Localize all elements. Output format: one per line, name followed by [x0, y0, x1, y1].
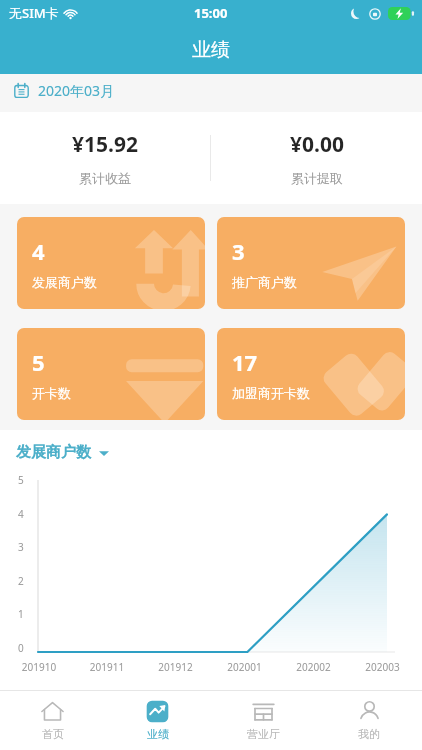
staticText: 发展商户数: [32, 274, 97, 290]
staticText: 201912: [141, 660, 210, 674]
staticText: 17: [232, 347, 258, 377]
button[interactable]: 17: [217, 328, 405, 420]
staticText: ¥15.92: [72, 130, 138, 159]
staticText: 1: [18, 607, 24, 621]
staticText: 5: [18, 473, 24, 487]
other: Select month: [14, 83, 29, 98]
staticText: 201911: [73, 660, 141, 674]
staticText: 202001: [210, 660, 279, 674]
staticText: 加盟商开卡数: [232, 385, 310, 401]
staticText: 201910: [5, 660, 73, 674]
staticText: 首页: [42, 727, 64, 741]
staticText: 2020年03月: [38, 81, 115, 100]
staticText: 4: [18, 507, 24, 521]
staticText: ¥0.00: [290, 130, 344, 159]
button[interactable]: 首页: [0, 691, 105, 750]
button[interactable]: Select month: [0, 74, 422, 107]
staticText: 无SIM卡: [9, 4, 59, 22]
button[interactable]: 4: [17, 217, 205, 309]
staticText: 0: [18, 641, 24, 655]
staticText: 202002: [279, 660, 348, 674]
staticText: 5: [32, 347, 45, 377]
staticText: 2: [18, 574, 24, 588]
button[interactable]: 3: [217, 217, 405, 309]
button[interactable]: 发展商户数: [16, 443, 109, 462]
staticText: 营业厅: [247, 727, 280, 741]
staticText: 我的: [358, 727, 380, 741]
button[interactable]: 我的: [316, 691, 422, 750]
staticText: 业绩: [147, 727, 169, 741]
staticText: 累计收益: [79, 170, 131, 186]
button[interactable]: 营业厅: [210, 691, 316, 750]
staticText: 累计提取: [291, 170, 343, 186]
staticText: 开卡数: [32, 385, 71, 401]
staticText: 15:00: [194, 4, 228, 22]
staticText: 发展商户数: [16, 443, 91, 462]
staticText: 推广商户数: [232, 274, 297, 290]
staticText: 202003: [348, 660, 417, 674]
button[interactable]: 业绩: [105, 691, 210, 750]
staticText: 4: [32, 236, 45, 266]
staticText: 业绩: [192, 38, 230, 62]
staticText: 3: [18, 540, 24, 554]
button[interactable]: 5: [17, 328, 205, 420]
staticText: 3: [232, 236, 245, 266]
